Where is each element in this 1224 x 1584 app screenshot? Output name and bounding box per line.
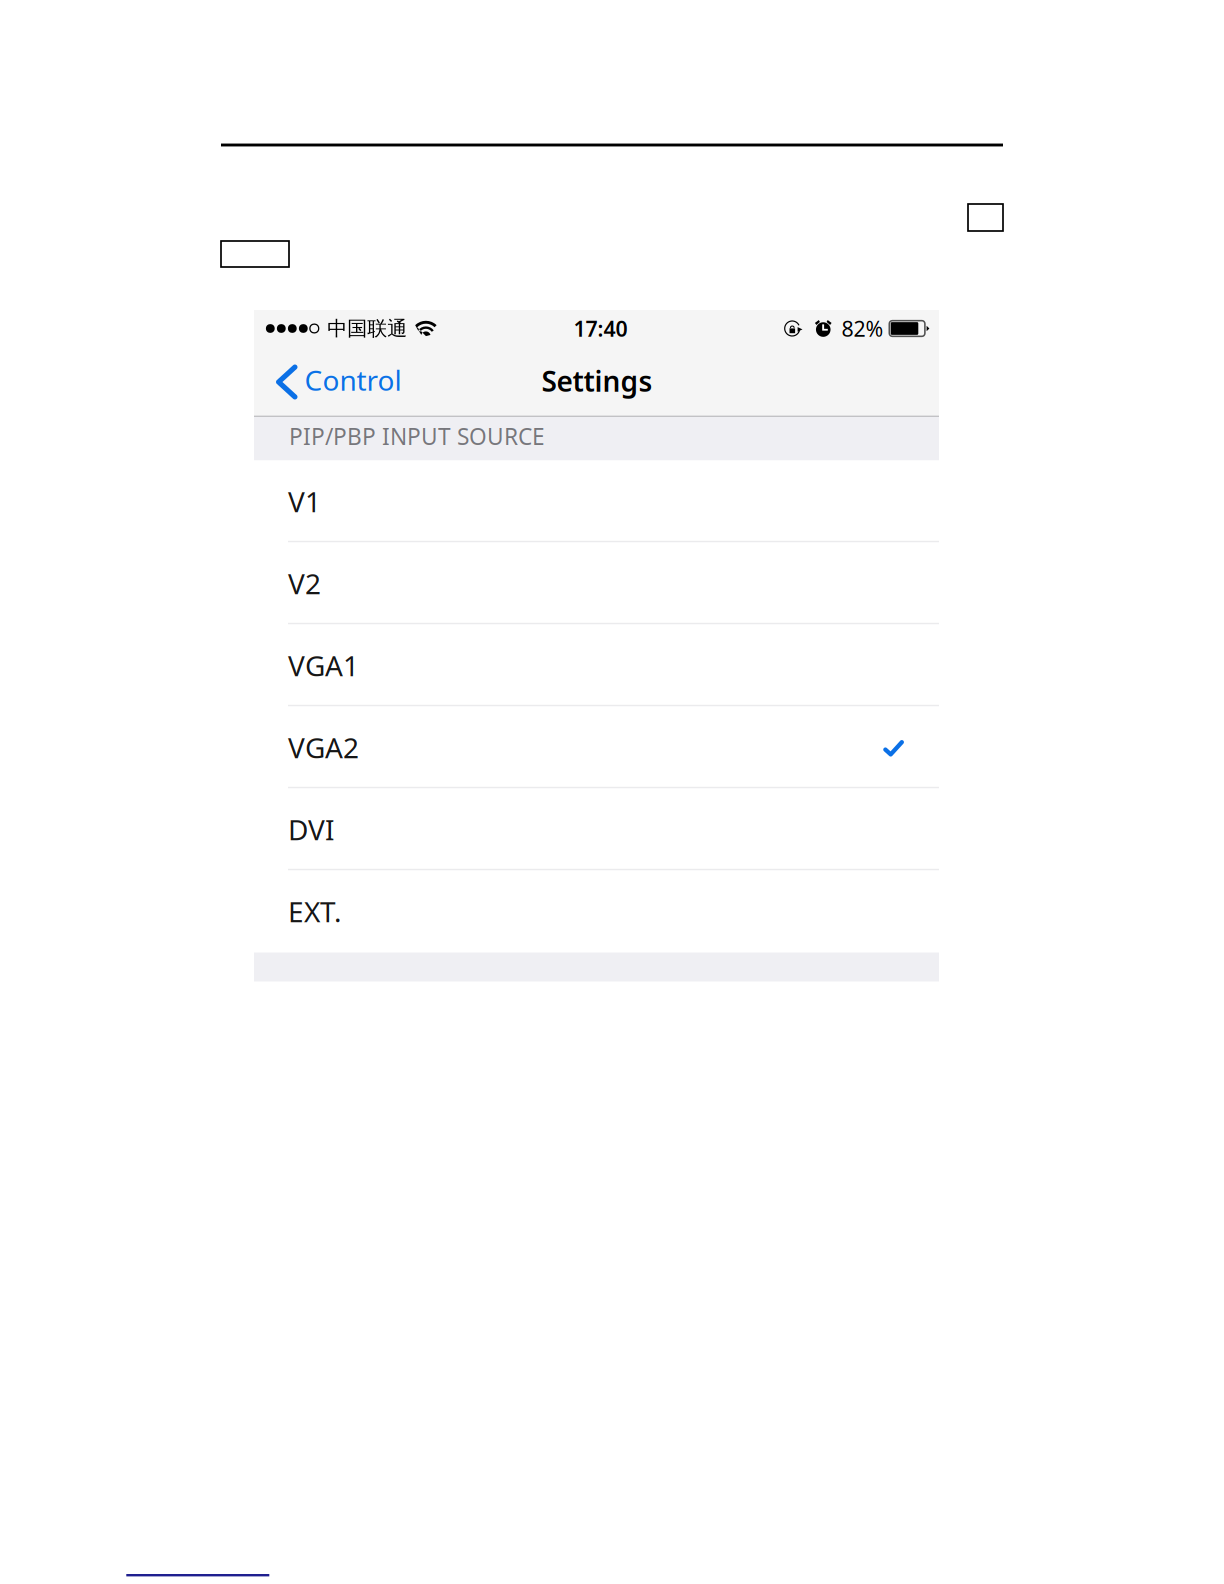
button[interactable]: DVI — [254, 788, 939, 870]
button[interactable]: VGA2 — [254, 706, 939, 788]
staticText: EXT. — [288, 893, 342, 930]
staticText: PIP/PBP INPUT SOURCE — [289, 421, 545, 451]
staticText: V1 — [288, 483, 321, 520]
button[interactable]: V2 — [254, 542, 939, 624]
staticText: Settings — [541, 362, 652, 399]
staticText: 82% — [841, 314, 883, 343]
staticText: 中国联通 — [327, 316, 407, 341]
button[interactable]: EXT. — [254, 870, 939, 952]
button[interactable]: V1 — [254, 460, 939, 542]
staticText: VGA1 — [288, 647, 359, 684]
staticText: DVI — [288, 811, 334, 848]
staticText: 17:40 — [573, 314, 627, 343]
staticText: V2 — [288, 565, 321, 602]
button[interactable]: VGA1 — [254, 624, 939, 706]
button[interactable]: Control — [254, 347, 415, 417]
staticText: VGA2 — [288, 729, 359, 766]
staticText: Control — [304, 361, 401, 399]
